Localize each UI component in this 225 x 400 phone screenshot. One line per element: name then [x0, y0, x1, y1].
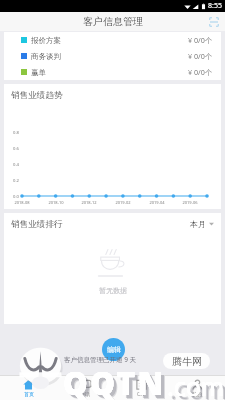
staticText: 腾牛网	[172, 355, 202, 368]
staticText: 2019-04	[148, 200, 166, 205]
staticText: 0.8	[4, 130, 19, 136]
staticText: .com	[167, 369, 225, 400]
staticText: ¥ 0/0个	[188, 67, 213, 77]
staticText: 编辑	[107, 345, 121, 354]
staticText: 暂无数据	[99, 286, 127, 295]
staticText: 销售业绩趋势	[11, 90, 63, 101]
button[interactable]: 编辑	[102, 338, 125, 361]
staticText: OA	[137, 391, 145, 398]
staticText: 2019-06	[181, 200, 199, 205]
staticText: 8:55	[208, 1, 222, 11]
staticText: .com	[171, 373, 225, 400]
staticText: .com	[167, 369, 225, 400]
button[interactable]: 报价方案	[4, 32, 221, 48]
staticText: 2018-12	[80, 200, 98, 205]
staticText: 赢单	[31, 68, 46, 77]
button[interactable]: Scan QR code	[207, 15, 221, 29]
staticText: 客户信息管理	[83, 15, 143, 28]
staticText: 我的	[192, 391, 202, 397]
staticText: ¥ 0/0个	[188, 51, 213, 61]
staticText: QQTN	[66, 365, 170, 400]
staticText: ¥ 0/0个	[188, 35, 213, 45]
staticText: .com	[167, 369, 225, 400]
staticText: 报价方案	[31, 36, 61, 45]
staticText: QQTN	[63, 362, 167, 400]
staticText: QQTN	[63, 362, 167, 400]
staticText: .com	[170, 372, 225, 400]
button[interactable]: 首页	[0, 376, 57, 400]
button[interactable]: 赢单	[4, 64, 221, 80]
staticText: 0.4	[4, 162, 19, 168]
staticText: 2018-08	[13, 200, 31, 205]
staticText: 0.6	[4, 146, 19, 152]
staticText: 本月	[190, 219, 206, 229]
staticText: QQTN	[67, 366, 171, 400]
button[interactable]: 我的	[169, 376, 225, 400]
staticText: 2018-10	[47, 200, 65, 205]
staticText: QQTN	[63, 362, 167, 400]
staticText: 2019-02	[114, 200, 132, 205]
staticText: 首页	[24, 391, 34, 397]
staticText: 0.2	[4, 178, 19, 184]
staticText: 0.0	[4, 194, 19, 200]
button[interactable]: 本月	[188, 217, 216, 231]
staticText: 会话	[80, 391, 90, 397]
button[interactable]: 商务谈判	[4, 48, 221, 64]
staticText: 商务谈判	[31, 52, 61, 61]
button[interactable]: 会话	[57, 376, 113, 400]
button[interactable]: OA	[113, 376, 169, 400]
staticText: 客户信息管理已开通 9 天	[64, 355, 137, 364]
staticText: 销售业绩排行	[11, 219, 63, 230]
